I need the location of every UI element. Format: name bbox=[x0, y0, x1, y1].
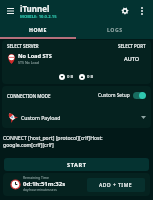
button[interactable]: More options bbox=[134, 3, 150, 19]
staticText: 0 B bbox=[87, 74, 94, 80]
button[interactable]: Settings bbox=[116, 2, 134, 20]
staticText: LOGS bbox=[107, 26, 123, 33]
staticText: 0d:1h:51m:32s bbox=[23, 180, 66, 188]
button[interactable]: AUTO bbox=[118, 53, 146, 65]
staticText: CONNECT [host_port] [protocol][crlf]Host… bbox=[3, 135, 103, 149]
staticText: No Load STS bbox=[18, 52, 52, 60]
staticText: START bbox=[67, 161, 87, 169]
button[interactable]: HOME bbox=[0, 22, 76, 37]
staticText: Remaining Time bbox=[23, 175, 49, 180]
staticText: STS No Load bbox=[18, 60, 40, 65]
button[interactable]: ADD + TIME bbox=[87, 178, 145, 192]
button[interactable]: START bbox=[4, 158, 149, 171]
staticText: AUTO bbox=[124, 55, 140, 63]
staticText: Custom Setup bbox=[98, 92, 130, 99]
staticText: ADD + TIME bbox=[99, 182, 133, 189]
button[interactable]: LOGS bbox=[76, 22, 153, 37]
staticText: MOBILE: 10.0.2.15 bbox=[20, 14, 57, 20]
staticText: SELECT SERVER bbox=[7, 43, 39, 49]
staticText: SELECT PORT bbox=[118, 43, 146, 49]
staticText: HOME bbox=[29, 26, 47, 33]
button[interactable]: Menu bbox=[0, 1, 20, 21]
staticText: 0 B bbox=[67, 74, 74, 80]
staticText: day:hour:minutes:secs bbox=[23, 188, 57, 192]
button[interactable]: Custom Setup bbox=[98, 92, 146, 99]
staticText: CONNECTION MODE bbox=[7, 93, 51, 99]
button[interactable]: No Load STS bbox=[7, 52, 52, 65]
button[interactable]: Custom Payload bbox=[2, 108, 151, 126]
staticText: iTunnel bbox=[20, 3, 50, 14]
staticText: Custom Payload bbox=[21, 114, 61, 121]
